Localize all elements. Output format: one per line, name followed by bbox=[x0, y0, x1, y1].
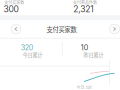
staticText: 今日累计 bbox=[23, 51, 43, 59]
staticText: 支付买家数 bbox=[4, 0, 24, 5]
staticText: 2,321 bbox=[73, 4, 93, 14]
button[interactable]: 下一个指标 bbox=[106, 21, 120, 37]
staticText: 320 bbox=[21, 43, 34, 52]
button[interactable]: 上一个指标 bbox=[8, 21, 24, 37]
staticText: 支付商品件数 bbox=[73, 0, 97, 5]
staticText: 昨日累计 bbox=[83, 51, 103, 59]
staticText: 300 bbox=[3, 4, 18, 14]
staticText: 今日 320 bbox=[76, 84, 91, 90]
staticText: 10 bbox=[81, 43, 89, 52]
staticText: 支付买家数 bbox=[46, 25, 76, 34]
